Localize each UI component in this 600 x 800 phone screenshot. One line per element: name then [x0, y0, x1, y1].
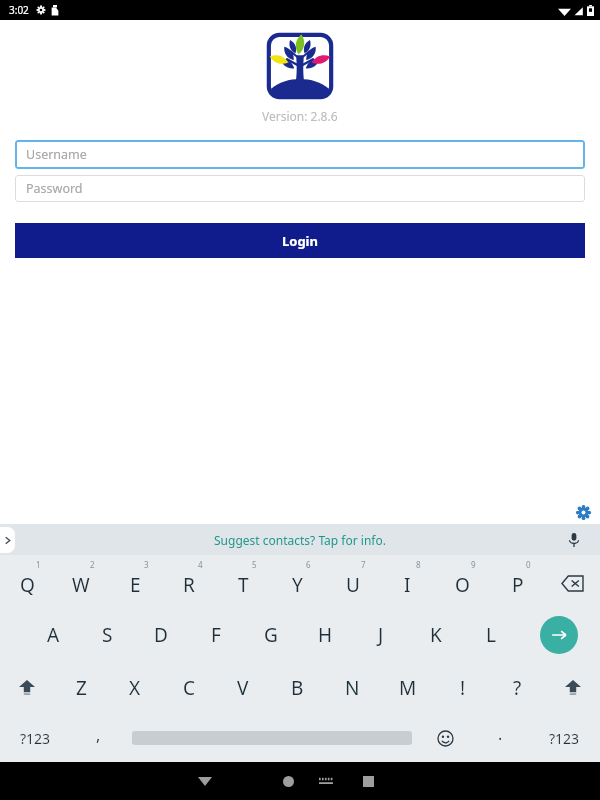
button[interactable]: ,: [71, 714, 126, 762]
button[interactable]: Voice input: [564, 530, 584, 550]
button[interactable]: L: [463, 608, 518, 661]
staticText: B: [291, 675, 304, 701]
button[interactable]: F: [188, 608, 243, 661]
staticText: ?: [513, 675, 522, 701]
staticText: 1: [36, 559, 41, 570]
staticText: F: [211, 622, 221, 648]
button[interactable]: Expand suggestions: [0, 527, 15, 553]
staticText: !: [460, 675, 466, 701]
button[interactable]: H: [298, 608, 353, 661]
button[interactable]: Password: [15, 175, 585, 202]
button[interactable]: M: [380, 661, 435, 714]
button[interactable]: 2: [54, 555, 108, 608]
button[interactable]: 4: [162, 555, 216, 608]
staticText: N: [345, 675, 360, 701]
button[interactable]: X: [108, 661, 162, 714]
staticText: ,: [96, 724, 101, 746]
button[interactable]: ?123: [0, 714, 71, 762]
button[interactable]: B: [270, 661, 325, 714]
staticText: 6: [306, 559, 311, 570]
staticText: P: [512, 572, 524, 598]
button[interactable]: Keyboard settings: [573, 502, 593, 522]
button[interactable]: Backspace: [545, 555, 600, 608]
staticText: C: [183, 675, 196, 701]
staticText: .: [498, 723, 503, 745]
staticText: M: [399, 675, 417, 701]
button[interactable]: ?123: [528, 714, 600, 762]
button[interactable]: Shift: [0, 661, 54, 714]
button[interactable]: Username: [15, 140, 585, 169]
button[interactable]: S: [80, 608, 134, 661]
staticText: V: [237, 675, 249, 701]
staticText: I: [404, 572, 411, 598]
staticText: 0: [526, 559, 531, 570]
button[interactable]: 5: [216, 555, 270, 608]
button[interactable]: Shift: [545, 661, 600, 714]
button[interactable]: K: [408, 608, 463, 661]
button[interactable]: Recent apps: [351, 764, 385, 798]
button[interactable]: Home: [271, 764, 305, 798]
button[interactable]: Enter: [518, 608, 600, 661]
staticText: Version: 2.8.6: [262, 108, 338, 124]
button[interactable]: Back: [188, 764, 222, 798]
staticText: Username: [26, 146, 87, 163]
staticText: 7: [361, 559, 366, 570]
staticText: A: [47, 622, 60, 648]
button[interactable]: A: [26, 608, 80, 661]
button[interactable]: ?: [490, 661, 545, 714]
staticText: T: [238, 572, 249, 598]
button[interactable]: 0: [490, 555, 545, 608]
button[interactable]: .: [473, 714, 528, 762]
button[interactable]: 7: [325, 555, 380, 608]
button[interactable]: 1: [0, 555, 54, 608]
button[interactable]: !: [435, 661, 490, 714]
button[interactable]: 9: [435, 555, 490, 608]
button[interactable]: Login: [15, 223, 585, 258]
staticText: 3: [144, 559, 149, 570]
button[interactable]: D: [134, 608, 188, 661]
staticText: U: [346, 572, 360, 598]
staticText: Login: [282, 232, 318, 250]
staticText: 5: [252, 559, 257, 570]
staticText: X: [129, 675, 141, 701]
staticText: Suggest contacts? Tap for info.: [214, 532, 386, 548]
staticText: J: [378, 622, 384, 648]
staticText: 2: [90, 559, 95, 570]
button[interactable]: 6: [270, 555, 325, 608]
button[interactable]: C: [162, 661, 216, 714]
staticText: S: [102, 622, 113, 648]
staticText: Y: [292, 572, 303, 598]
staticText: 3:02: [9, 3, 29, 17]
button[interactable]: V: [216, 661, 270, 714]
staticText: H: [318, 622, 333, 648]
button[interactable]: Space: [126, 714, 418, 762]
button[interactable]: J: [353, 608, 408, 661]
staticText: Password: [26, 180, 83, 197]
staticText: W: [72, 572, 90, 598]
staticText: L: [486, 622, 496, 648]
staticText: 4: [198, 559, 203, 570]
staticText: E: [130, 572, 141, 598]
staticText: O: [455, 572, 470, 598]
staticText: K: [430, 622, 442, 648]
button[interactable]: Suggest contacts? Tap for info.: [0, 524, 600, 555]
staticText: 9: [471, 559, 476, 570]
button[interactable]: Switch keyboard: [312, 767, 340, 795]
button[interactable]: G: [243, 608, 298, 661]
staticText: Q: [20, 572, 35, 598]
staticText: G: [264, 622, 278, 648]
button[interactable]: Z: [54, 661, 108, 714]
button[interactable]: N: [325, 661, 380, 714]
staticText: D: [154, 622, 168, 648]
button[interactable]: Emoji: [418, 714, 473, 762]
staticText: R: [183, 572, 195, 598]
button[interactable]: 3: [108, 555, 162, 608]
staticText: ?123: [20, 729, 51, 748]
staticText: Z: [76, 675, 87, 701]
button[interactable]: 8: [380, 555, 435, 608]
staticText: 8: [416, 559, 421, 570]
staticText: ?123: [549, 729, 580, 748]
